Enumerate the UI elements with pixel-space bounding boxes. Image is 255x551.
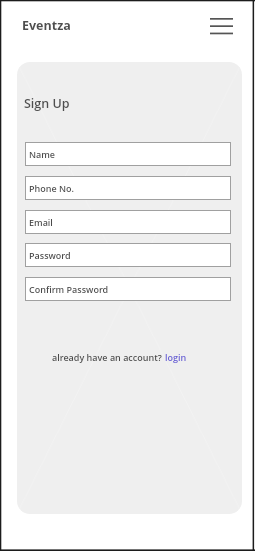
staticText: Sign Up xyxy=(24,95,70,112)
staticText: Email xyxy=(29,216,53,228)
button[interactable]: Confirm Password xyxy=(25,277,231,301)
staticText: already have an account? xyxy=(52,351,165,363)
button[interactable]: Phone No. xyxy=(25,176,231,200)
staticText: Confirm Password xyxy=(29,283,109,295)
staticText: Name xyxy=(29,148,56,160)
button[interactable]: Name xyxy=(25,142,231,166)
button[interactable]: Menu xyxy=(208,13,234,39)
button[interactable]: already have an account? xyxy=(52,351,187,363)
button[interactable]: Email xyxy=(25,210,231,234)
staticText: login xyxy=(165,351,187,363)
staticText: Phone No. xyxy=(29,182,75,194)
button[interactable]: Password xyxy=(25,243,231,267)
staticText: Password xyxy=(29,249,71,261)
staticText: Eventza xyxy=(22,17,71,34)
